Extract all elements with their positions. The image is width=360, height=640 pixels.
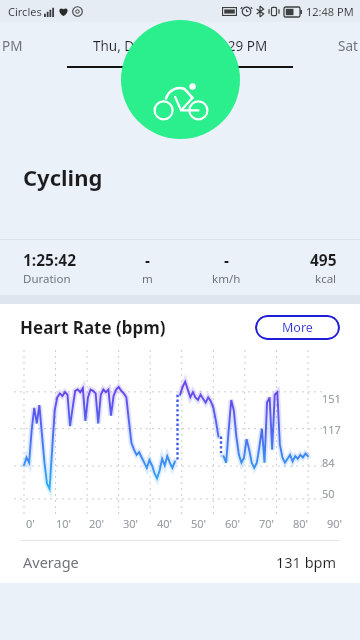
staticText: 10' — [56, 516, 72, 531]
staticText: 495 — [310, 249, 337, 270]
staticText: Thu, Dec 17 2020, 09:29 PM — [93, 37, 268, 55]
staticText: PM — [2, 37, 23, 55]
staticText: 84 — [322, 455, 335, 470]
staticText: Cycling — [23, 162, 103, 192]
staticText: 60' — [225, 516, 241, 531]
staticText: 90' — [327, 516, 343, 531]
staticText: Heart Rate (bpm) — [20, 316, 166, 339]
staticText: 40' — [157, 516, 173, 531]
button[interactable]: Sat — [318, 22, 360, 69]
staticText: kcal — [315, 271, 337, 287]
staticText: 1:25:42 — [23, 249, 77, 270]
staticText: Sat — [338, 37, 358, 55]
staticText: 12:48 PM — [306, 4, 354, 19]
staticText: 151 — [322, 391, 341, 406]
staticText: 30' — [123, 516, 139, 531]
button[interactable]: More — [255, 315, 340, 340]
staticText: - — [145, 249, 150, 270]
staticText: 80' — [293, 516, 309, 531]
staticText: m — [142, 271, 153, 287]
button[interactable]: PM — [0, 22, 42, 69]
staticText: 50' — [191, 516, 207, 531]
staticText: 117 — [322, 422, 341, 437]
staticText: 20' — [89, 516, 105, 531]
button[interactable]: Thu, Dec 17 2020, 09:29 PM — [67, 22, 293, 69]
staticText: 0' — [26, 516, 35, 531]
staticText: Average — [23, 552, 79, 572]
staticText: km/h — [212, 271, 241, 287]
staticText: Circles — [8, 4, 42, 19]
staticText: - — [224, 249, 229, 270]
staticText: Duration — [23, 271, 71, 287]
staticText: 131 bpm — [276, 552, 337, 572]
staticText: 50 — [322, 486, 335, 501]
staticText: More — [282, 319, 313, 336]
staticText: 70' — [259, 516, 275, 531]
